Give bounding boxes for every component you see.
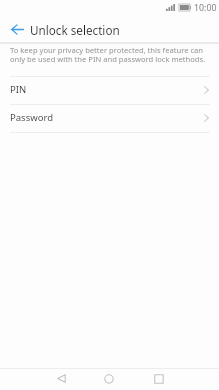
staticText: To keep your privacy better protected, t… <box>10 45 210 64</box>
staticText: Unlock selection <box>30 22 120 38</box>
staticText: PIN <box>10 83 27 96</box>
button[interactable]: Recents <box>145 368 173 389</box>
button[interactable]: Home <box>95 368 123 389</box>
staticText: 10:00 <box>194 2 217 14</box>
staticText: Password <box>10 111 53 124</box>
button[interactable]: Back <box>0 15 30 42</box>
button[interactable]: Back <box>47 368 75 389</box>
button[interactable]: PIN <box>0 77 219 104</box>
button[interactable]: Password <box>0 105 219 132</box>
